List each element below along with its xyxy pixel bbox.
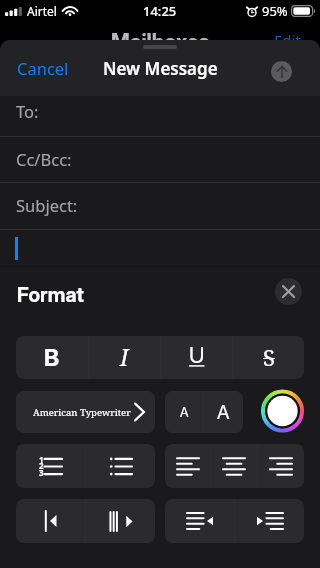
button[interactable] (0, 230, 320, 266)
staticText: 95% (262, 2, 288, 20)
button[interactable]: Italic (89, 336, 160, 379)
button[interactable]: Cc/Bcc: (0, 137, 320, 183)
button[interactable]: Text colour (259, 390, 306, 432)
button[interactable]: American Typewriter (16, 391, 155, 433)
staticText: Subject: (16, 194, 78, 216)
button[interactable]: Right to left (86, 499, 155, 543)
button[interactable]: Align centre (211, 444, 257, 488)
staticText: A (180, 404, 189, 420)
staticText: Cc/Bcc: (16, 148, 72, 170)
button[interactable]: Cancel (17, 57, 69, 79)
staticText: S (263, 342, 275, 372)
staticText: Format (17, 283, 84, 307)
button[interactable]: Bold (16, 336, 88, 379)
button[interactable]: Underline (161, 336, 232, 379)
staticText: I (120, 341, 129, 372)
staticText: 1 (39, 454, 44, 465)
button[interactable]: Decrease indent (165, 499, 234, 543)
button[interactable]: Smaller font (165, 391, 203, 433)
button[interactable]: Numbered list (16, 444, 85, 488)
button[interactable]: Strikethrough (233, 336, 304, 379)
staticText: 3 (39, 467, 44, 478)
button[interactable]: Increase indent (235, 499, 304, 543)
staticText: American Typewriter (33, 406, 131, 419)
staticText: Cancel (17, 57, 69, 79)
button[interactable]: Subject: (0, 183, 320, 230)
staticText: To: (16, 100, 39, 122)
button[interactable]: Align right (258, 444, 304, 488)
staticText: A (217, 401, 230, 424)
staticText: Airtel (27, 3, 57, 19)
button[interactable]: Send (271, 61, 292, 82)
staticText: U (189, 342, 205, 369)
button[interactable]: Align left (165, 444, 210, 488)
staticText: Edit (274, 30, 301, 50)
staticText: 14:25 (143, 2, 177, 20)
button[interactable]: To: (0, 96, 320, 137)
button[interactable]: Larger font (204, 391, 243, 433)
staticText: 2 (39, 460, 44, 471)
button[interactable]: Close (275, 278, 302, 305)
staticText: B (44, 343, 60, 371)
staticText: New Message (103, 57, 218, 80)
button[interactable]: Left to right (16, 499, 85, 543)
staticText: Mailboxes (111, 29, 210, 54)
button[interactable]: Bulleted list (86, 444, 155, 488)
